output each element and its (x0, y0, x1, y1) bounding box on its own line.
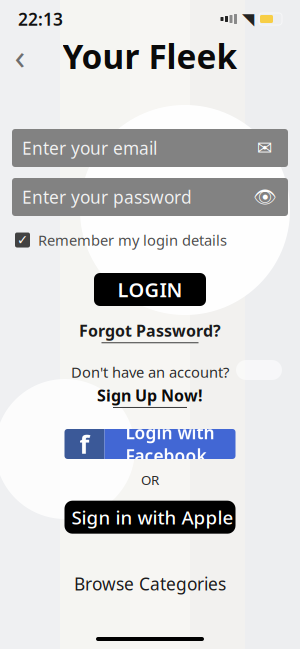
staticText: 22:13 (18, 7, 63, 30)
staticText: LOGIN (117, 276, 182, 303)
staticText: ✉ (257, 137, 273, 159)
staticText: Browse Categories (74, 572, 226, 595)
staticText: OR (141, 471, 159, 489)
staticText: Sign in with Apple (71, 505, 233, 530)
button[interactable]: Enter your password (12, 178, 288, 216)
staticText: ✓ (17, 232, 28, 247)
button[interactable]: ✓ (0, 229, 300, 251)
button[interactable]: Forgot Password? (79, 320, 221, 343)
staticText: Login with Facebook (125, 421, 214, 467)
staticText: Remember my login details (38, 230, 227, 250)
button[interactable]: LOGIN (94, 273, 206, 306)
staticText: ◥ (242, 10, 254, 28)
staticText: Don't have an account? (71, 362, 229, 382)
staticText: Enter your password (22, 185, 192, 208)
staticText: Sign Up Now! (97, 385, 203, 406)
staticText: Your Fleek (62, 34, 237, 78)
staticText: Forgot Password? (79, 320, 221, 341)
button[interactable]: Show password (252, 182, 278, 212)
button[interactable]: Email (252, 133, 278, 163)
button[interactable]: f (64, 429, 235, 459)
staticText: f (79, 427, 89, 461)
button[interactable]: Enter your email (12, 129, 288, 167)
button[interactable] (64, 501, 235, 534)
staticText: ‹ (14, 33, 25, 79)
staticText: 👁 (253, 186, 277, 208)
button[interactable]: Back (0, 38, 40, 74)
button[interactable]: Browse Categories (74, 573, 226, 595)
staticText: Enter your email (22, 136, 157, 159)
button[interactable]: Sign Up Now! (97, 385, 203, 408)
